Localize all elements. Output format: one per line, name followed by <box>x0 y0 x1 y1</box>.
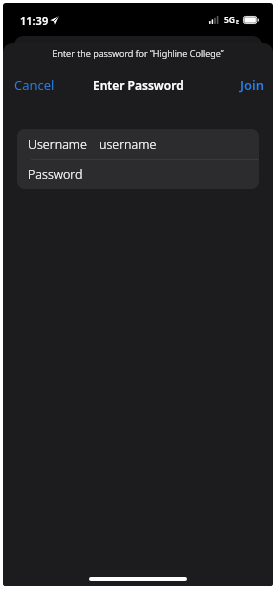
staticText: Enter the password for “Highline College… <box>3 47 273 60</box>
other: Cellular signal strength <box>209 16 221 24</box>
staticText: Password <box>28 166 83 183</box>
staticText: Join <box>240 76 265 94</box>
button[interactable]: Password <box>17 160 259 189</box>
staticText: E <box>236 18 240 25</box>
staticText: 5G <box>224 14 236 26</box>
button[interactable]: Username <box>17 129 259 159</box>
staticText: Username <box>28 136 87 153</box>
other: Location services active <box>50 16 59 25</box>
button[interactable]: Cancel <box>3 72 65 98</box>
staticText: 11:39 <box>20 13 49 28</box>
other: Battery full <box>243 16 259 24</box>
staticText: username <box>99 136 157 153</box>
staticText: Cancel <box>14 76 55 94</box>
staticText: Enter Password <box>93 77 184 93</box>
button[interactable]: Join <box>230 72 273 98</box>
